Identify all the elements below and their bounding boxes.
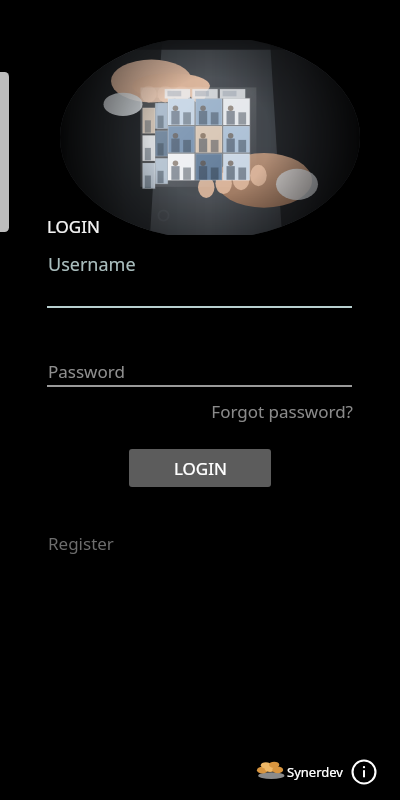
button[interactable]: LOGIN — [129, 449, 271, 487]
staticText: Synerdev — [287, 763, 343, 781]
staticText: LOGIN — [47, 215, 100, 238]
staticText: Forgot password? — [211, 400, 353, 423]
button[interactable]: Register — [44, 528, 110, 558]
button[interactable]: Forgot password? — [173, 396, 353, 426]
staticText: LOGIN — [174, 457, 227, 480]
staticText: Username — [48, 252, 136, 277]
other: Synerdev logo — [255, 758, 287, 784]
staticText: Password — [48, 360, 125, 383]
button[interactable]: Info — [350, 758, 378, 786]
button[interactable]: Username — [47, 250, 353, 308]
button[interactable]: Password — [47, 360, 353, 387]
staticText: Register — [48, 532, 114, 555]
